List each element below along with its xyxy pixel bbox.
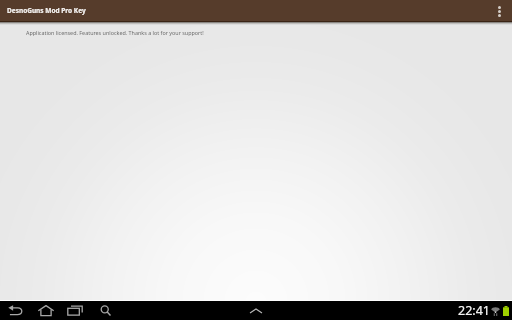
other: Wi-Fi connected	[491, 306, 500, 316]
staticText: Application licensed. Features unlocked.…	[26, 29, 204, 36]
button[interactable]: More options	[490, 2, 508, 20]
other: Battery full	[503, 306, 509, 316]
staticText: 22:41	[458, 302, 490, 319]
button[interactable]: Home	[36, 301, 55, 320]
staticText: DesnoGuns Mod Pro Key	[7, 6, 86, 15]
button[interactable]: Back	[6, 301, 25, 320]
button[interactable]: Search	[96, 301, 115, 320]
button[interactable]: Expand notifications	[246, 301, 266, 320]
button[interactable]: Recent apps	[65, 301, 84, 320]
